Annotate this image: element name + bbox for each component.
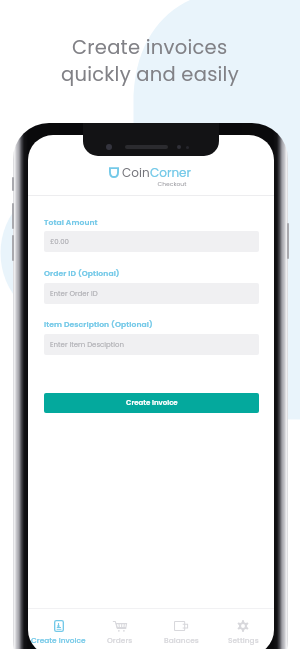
button[interactable]: Create Invoice (44, 393, 259, 413)
staticText: Total Amount (44, 217, 98, 228)
button[interactable]: Create Invoice (28, 609, 89, 649)
button[interactable]: Balances (150, 609, 212, 649)
button[interactable]: Orders (89, 609, 150, 649)
staticText: Enter Item Desciption (50, 340, 125, 350)
staticText: Checkout (157, 180, 187, 188)
staticText: Corner (150, 164, 192, 181)
staticText: Balances (164, 635, 199, 645)
staticText: Item Description (Optional) (44, 319, 153, 330)
button[interactable]: £0.00 (44, 231, 259, 252)
staticText: £0.00 (50, 237, 69, 247)
staticText: quickly and easily (61, 61, 239, 88)
staticText: Order ID (Optional) (44, 268, 120, 279)
staticText: Create Invoice (126, 398, 178, 408)
staticText: Coin (122, 164, 150, 181)
staticText: Create invoices (72, 34, 228, 61)
button[interactable]: Settings (212, 609, 274, 649)
button[interactable]: Enter Item Desciption (44, 334, 259, 355)
staticText: Orders (107, 635, 133, 645)
staticText: Create Invoice (31, 635, 86, 645)
staticText: Enter Order ID (50, 289, 98, 299)
staticText: Settings (228, 635, 259, 645)
button[interactable]: Enter Order ID (44, 283, 259, 304)
